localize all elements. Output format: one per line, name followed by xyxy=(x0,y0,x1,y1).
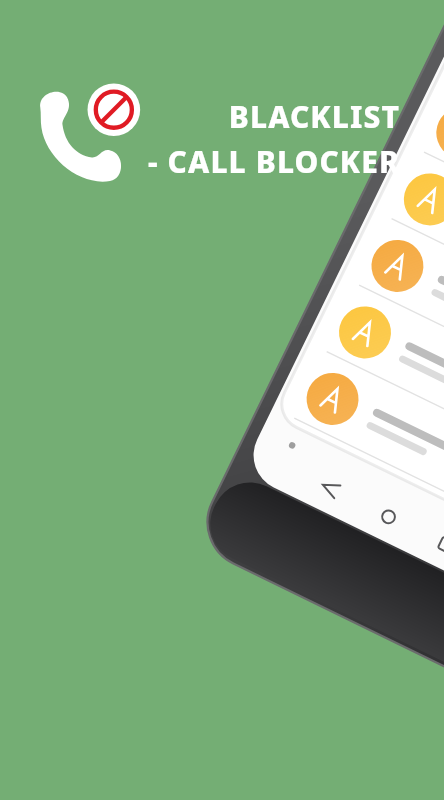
staticText: BLACKLIST xyxy=(128,96,400,137)
other: Blacklist call blocker logo xyxy=(36,80,148,190)
staticText: - CALL BLOCKER xyxy=(128,141,400,182)
button[interactable]: App preview on phone xyxy=(0,0,444,800)
